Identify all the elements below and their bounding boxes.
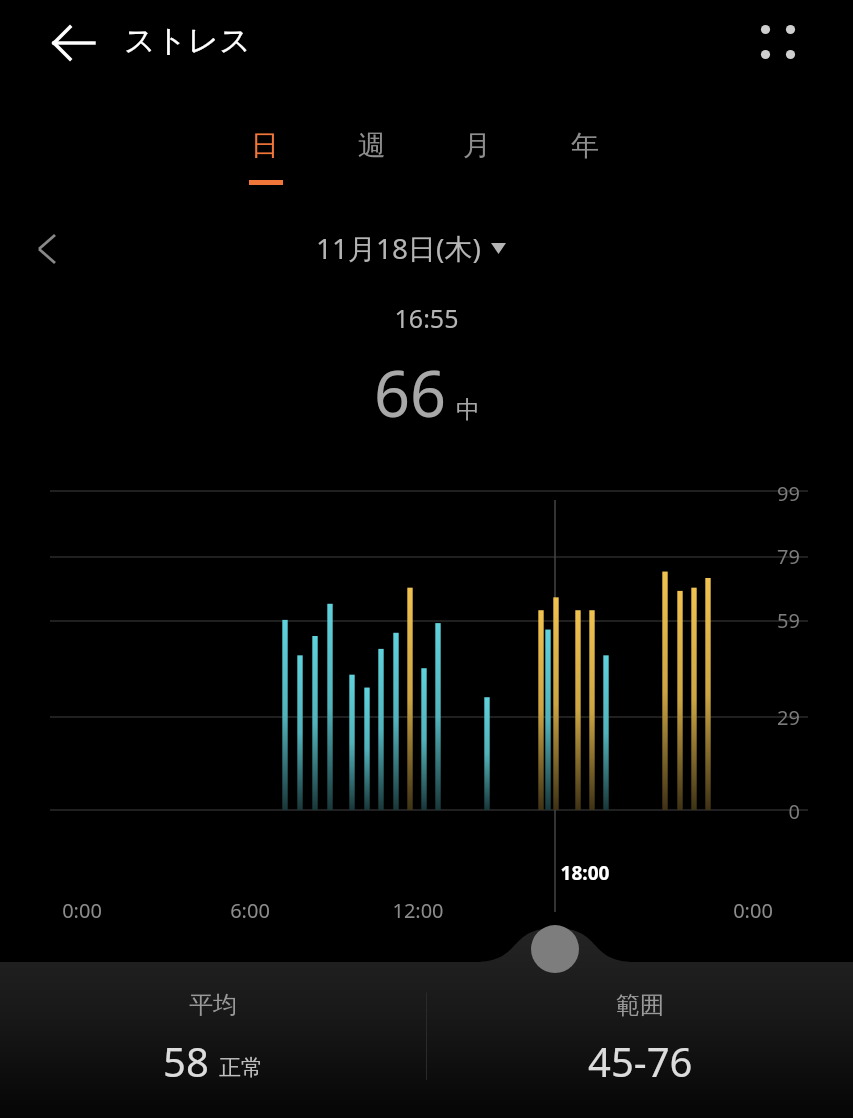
button[interactable]: 週 — [337, 128, 407, 190]
staticText: 月 — [463, 128, 491, 163]
staticText: 中 — [456, 395, 480, 425]
staticText: 99 — [742, 480, 800, 507]
button[interactable]: More options — [748, 12, 808, 72]
staticText: 範囲 — [427, 990, 853, 1020]
staticText: 0 — [742, 798, 800, 825]
button[interactable]: Previous day — [20, 222, 74, 276]
button[interactable]: 11月18日(木) — [316, 229, 506, 267]
staticText: 日 — [251, 128, 279, 163]
staticText: 45-76 — [588, 1034, 693, 1088]
button[interactable]: 範囲 — [427, 990, 853, 1100]
staticText: 18:00 — [540, 860, 630, 886]
staticText: 正常 — [219, 1054, 263, 1082]
button[interactable]: 日 — [230, 128, 300, 190]
staticText: 0:00 — [708, 897, 798, 924]
staticText: 6:00 — [205, 897, 295, 924]
staticText: 66 — [374, 350, 447, 436]
staticText: 週 — [358, 128, 386, 163]
staticText: 59 — [742, 607, 800, 634]
button[interactable]: 平均 — [0, 990, 426, 1100]
staticText: 12:00 — [373, 897, 463, 924]
staticText: 79 — [742, 543, 800, 570]
button[interactable]: Back — [38, 14, 110, 72]
staticText: 16:55 — [0, 301, 853, 335]
staticText: ストレス — [124, 21, 251, 60]
staticText: 平均 — [0, 990, 426, 1020]
button[interactable]: 月 — [442, 128, 512, 190]
staticText: 年 — [571, 128, 599, 163]
staticText: 29 — [742, 704, 800, 731]
staticText: 58 — [163, 1034, 209, 1088]
staticText: 0:00 — [37, 897, 127, 924]
button[interactable]: 年 — [550, 128, 620, 190]
staticText: 11月18日(木) — [316, 229, 481, 267]
